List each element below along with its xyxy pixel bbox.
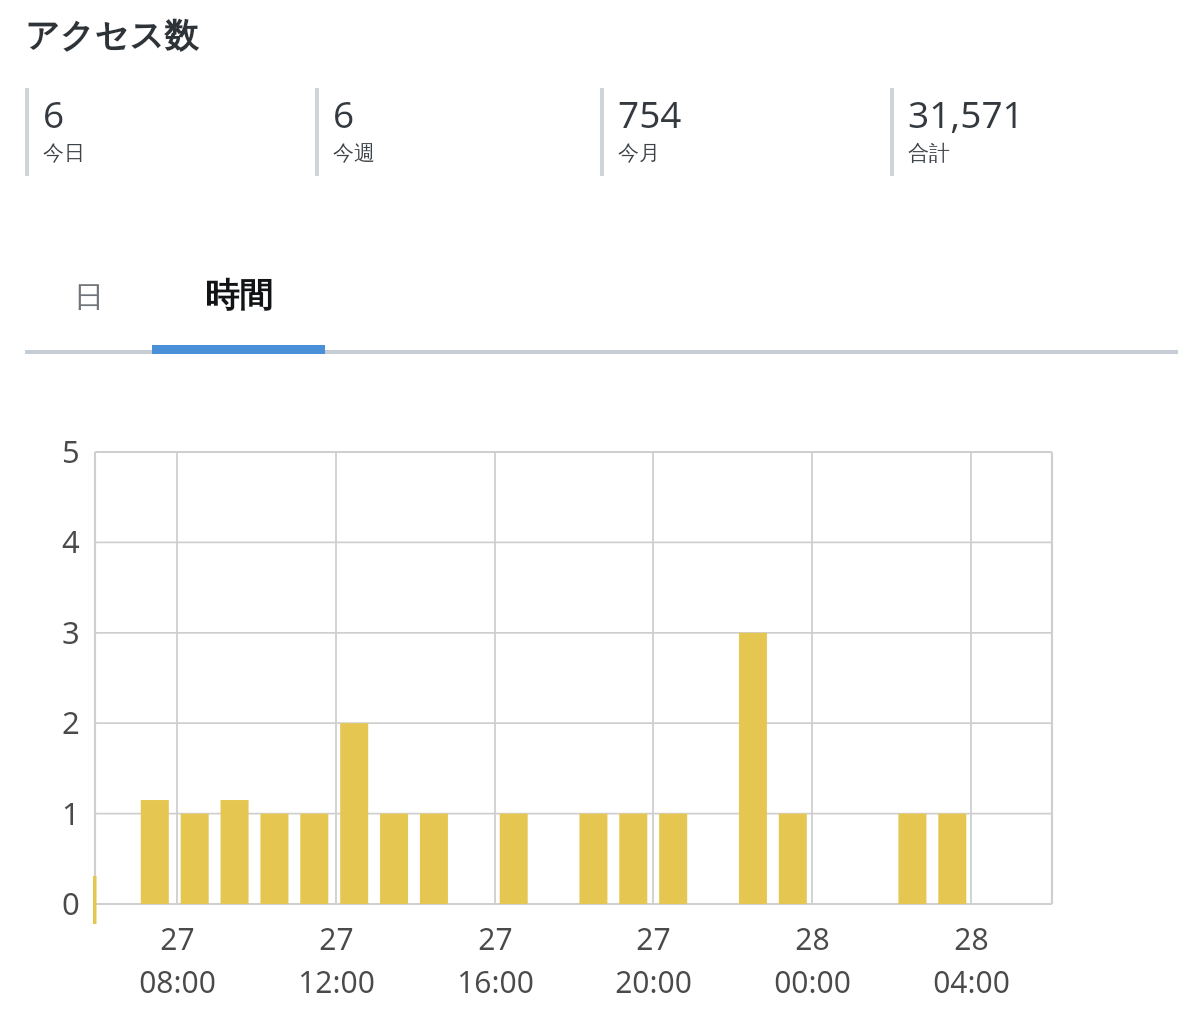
staticText: 日 xyxy=(74,278,104,316)
staticText: 08:00 xyxy=(139,961,216,1002)
staticText: 754 xyxy=(618,88,682,138)
staticText: 27 xyxy=(319,918,354,959)
staticText: 04:00 xyxy=(933,961,1010,1002)
staticText: 今週 xyxy=(333,140,375,166)
staticText: 6 xyxy=(333,88,355,138)
staticText: 時間 xyxy=(205,274,273,317)
staticText: 5 xyxy=(62,430,80,472)
staticText: 6 xyxy=(43,88,65,138)
button[interactable]: 754 xyxy=(600,88,682,176)
button[interactable]: 時間 xyxy=(152,262,325,352)
staticText: 12:00 xyxy=(298,961,375,1002)
staticText: 31,571 xyxy=(908,88,1024,138)
button[interactable]: 日 xyxy=(25,262,152,352)
staticText: 4 xyxy=(62,520,80,562)
staticText: 今月 xyxy=(618,140,660,166)
staticText: 27 xyxy=(478,918,513,959)
staticText: 20:00 xyxy=(615,961,692,1002)
staticText: 27 xyxy=(160,918,195,959)
staticText: 28 xyxy=(954,918,989,959)
staticText: 28 xyxy=(795,918,830,959)
staticText: 2 xyxy=(62,701,80,743)
staticText: 3 xyxy=(62,611,80,653)
button[interactable]: 6 xyxy=(315,88,375,176)
staticText: 27 xyxy=(636,918,671,959)
staticText: 今日 xyxy=(43,140,85,166)
staticText: 合計 xyxy=(908,140,950,166)
staticText: 1 xyxy=(62,792,80,834)
staticText: 0 xyxy=(62,882,80,924)
staticText: 16:00 xyxy=(457,961,534,1002)
button[interactable]: 6 xyxy=(25,88,85,176)
staticText: アクセス数 xyxy=(25,14,199,57)
button[interactable]: 31,571 xyxy=(890,88,1024,176)
staticText: 00:00 xyxy=(774,961,851,1002)
